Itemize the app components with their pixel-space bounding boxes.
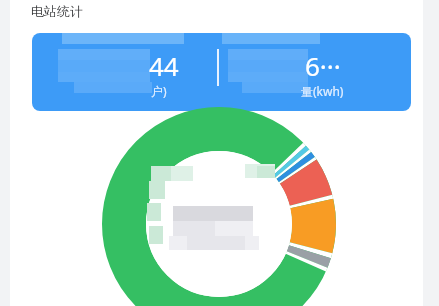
- staticText: 电站统计: [31, 3, 83, 19]
- button[interactable]: 44: [32, 33, 411, 111]
- staticText: 44: [149, 48, 179, 83]
- other: 电站统计饼图: [0, 0, 439, 306]
- staticText: 6···: [305, 48, 341, 83]
- staticText: 户): [151, 83, 167, 99]
- staticText: 量(kwh): [301, 83, 344, 99]
